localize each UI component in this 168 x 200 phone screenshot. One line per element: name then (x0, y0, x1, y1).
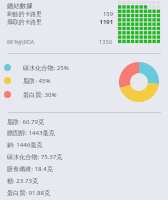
staticText: 剩餘的卡路里 (7, 10, 42, 17)
staticText: 88 %的RDA (7, 38, 35, 45)
staticText: 膳食纖維: 18.4克 (7, 164, 53, 172)
button[interactable]: 剩餘的卡路里 (7, 10, 113, 18)
button[interactable]: 蛋白質: 91.88克 (7, 188, 157, 199)
staticText: 碳水化合物: 75.37克 (7, 152, 63, 160)
button[interactable]: 攝取的卡路里 (7, 18, 113, 26)
button[interactable]: 膽固醇: 1443毫克 (7, 128, 157, 139)
staticText: 碳水化合物: 25% (23, 63, 69, 71)
staticText: 膽固醇: 1443毫克 (7, 128, 55, 136)
staticText: 1191 (7, 18, 113, 26)
button[interactable]: 88 %的RDA (7, 38, 107, 46)
staticText: 鈉: 1446毫克 (7, 140, 43, 148)
button[interactable]: 脂肪: 45% (0, 75, 110, 86)
button[interactable]: 糖: 23.73克 (7, 176, 157, 187)
staticText: 總結數據 (7, 2, 33, 10)
staticText: 脂肪: 45% (23, 76, 51, 84)
staticText: 蛋白質: 91.88克 (7, 188, 51, 196)
button[interactable]: 碳水化合物: 25% (0, 62, 110, 73)
staticText: 蛋白質: 30% (23, 90, 57, 98)
button[interactable]: 碳水化合物: 75.37克 (7, 152, 157, 163)
staticText: 脂肪: 60.79克 (7, 117, 45, 125)
staticText: 糖: 23.73克 (7, 176, 38, 184)
button[interactable]: 蛋白質: 30% (0, 89, 110, 100)
staticText: 159 (7, 10, 113, 18)
staticText: 1350 (85, 38, 112, 46)
button[interactable]: 膳食纖維: 18.4克 (7, 164, 157, 175)
button[interactable]: 鈉: 1446毫克 (7, 140, 157, 151)
button[interactable]: 脂肪: 60.79克 (7, 117, 157, 128)
staticText: 攝取的卡路里 (7, 18, 42, 25)
